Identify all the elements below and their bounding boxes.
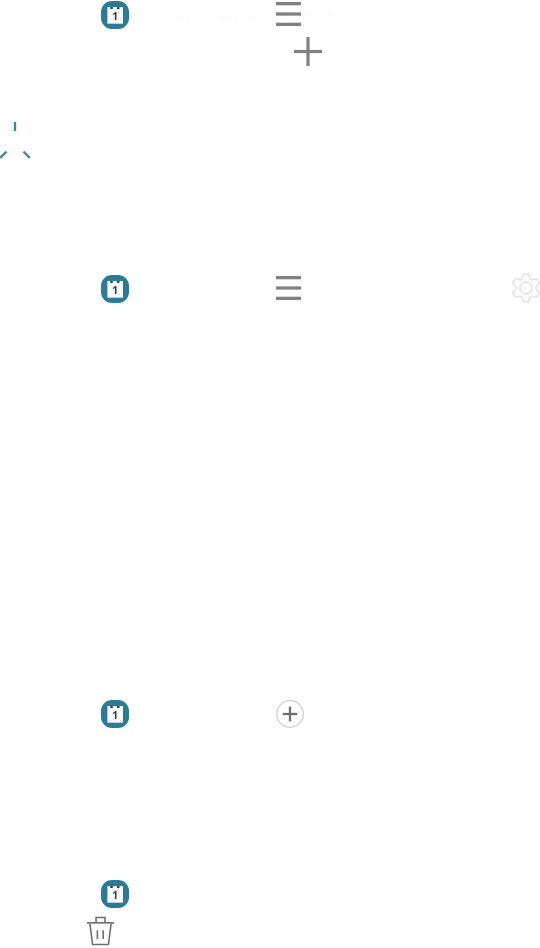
staticText: Sunday 01 September 2024 <box>139 5 335 25</box>
button[interactable]: More options <box>276 276 301 300</box>
staticText: 1 <box>112 707 119 722</box>
button[interactable]: More options <box>276 2 301 26</box>
button[interactable]: Delete <box>87 916 114 945</box>
other: Syncing <box>0 119 39 167</box>
button[interactable]: Settings <box>510 272 540 304</box>
button[interactable]: 1 <box>101 275 301 303</box>
staticText: 1 <box>112 282 119 297</box>
button[interactable]: 1 <box>101 700 261 728</box>
button[interactable]: Add <box>294 37 322 66</box>
staticText: 1 <box>112 8 119 23</box>
button[interactable]: 1 <box>101 1 421 29</box>
button[interactable]: 1 <box>101 880 261 908</box>
button[interactable]: Add event <box>276 700 304 728</box>
staticText: 1 <box>112 887 119 902</box>
